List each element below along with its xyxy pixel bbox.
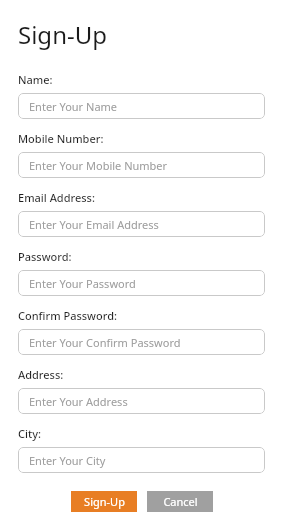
- button[interactable]: Enter Your City: [18, 447, 265, 473]
- staticText: City:: [18, 426, 41, 441]
- staticText: Cancel: [163, 494, 198, 509]
- staticText: Enter Your Address: [29, 394, 128, 409]
- staticText: Enter Your City: [29, 453, 106, 468]
- button[interactable]: Enter Your Password: [18, 270, 265, 296]
- button[interactable]: Enter Your Name: [18, 93, 265, 119]
- staticText: Confirm Password:: [18, 308, 117, 323]
- staticText: Mobile Number:: [18, 131, 104, 146]
- staticText: Enter Your Confirm Password: [29, 335, 181, 350]
- button[interactable]: Cancel: [147, 491, 213, 512]
- staticText: Enter Your Password: [29, 276, 136, 291]
- button[interactable]: Enter Your Email Address: [18, 211, 265, 237]
- staticText: Name:: [18, 72, 53, 87]
- button[interactable]: Enter Your Mobile Number: [18, 152, 265, 178]
- button[interactable]: Sign-Up: [71, 491, 137, 512]
- button[interactable]: Enter Your Address: [18, 388, 265, 414]
- staticText: Enter Your Mobile Number: [29, 158, 168, 173]
- staticText: Enter Your Name: [29, 99, 118, 114]
- staticText: Email Address:: [18, 190, 95, 205]
- staticText: Sign-Up: [84, 494, 125, 509]
- staticText: Password:: [18, 249, 72, 264]
- button[interactable]: Enter Your Confirm Password: [18, 329, 265, 355]
- staticText: Enter Your Email Address: [29, 217, 159, 232]
- staticText: Sign-Up: [18, 18, 107, 51]
- staticText: Address:: [18, 367, 64, 382]
